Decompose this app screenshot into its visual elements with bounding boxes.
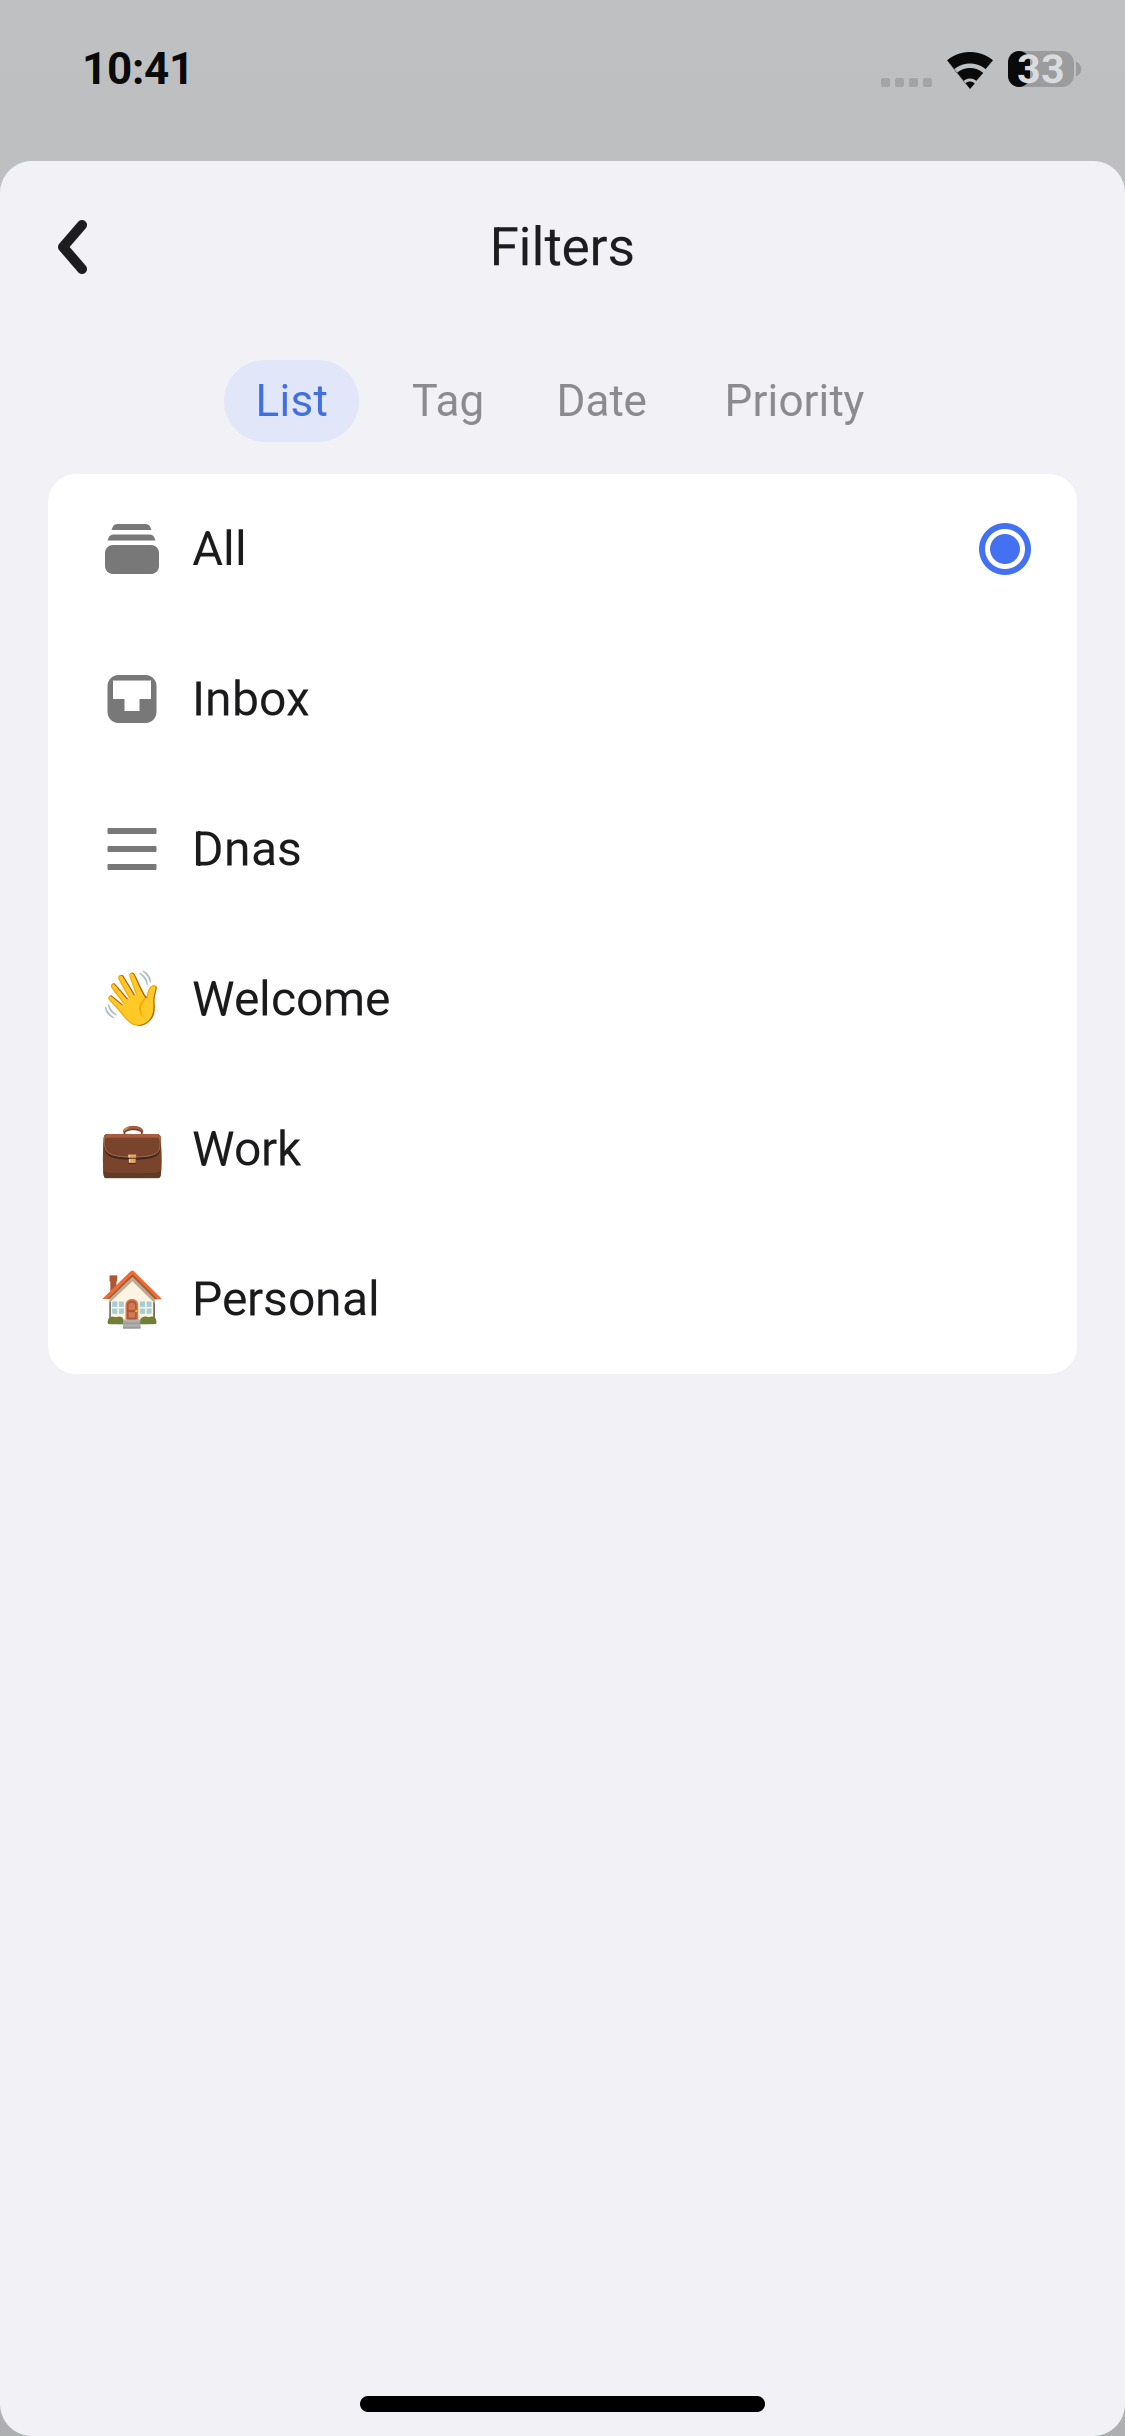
- button[interactable]: Back: [0, 194, 125, 300]
- staticText: Dnas: [192, 821, 302, 877]
- button[interactable]: 💼: [48, 1074, 1077, 1224]
- button[interactable]: Inbox: [48, 624, 1077, 774]
- staticText: All: [192, 521, 247, 577]
- button[interactable]: Priority: [688, 360, 901, 442]
- staticText: Work: [192, 1121, 301, 1177]
- button[interactable]: List: [224, 360, 359, 442]
- button[interactable]: Dnas: [48, 774, 1077, 924]
- button[interactable]: 👋: [48, 924, 1077, 1074]
- button[interactable]: Tag: [381, 360, 515, 442]
- staticText: Priority: [724, 375, 864, 427]
- button[interactable]: 🏠: [48, 1224, 1077, 1374]
- staticText: 💼: [99, 1118, 165, 1180]
- button[interactable]: All: [48, 474, 1077, 624]
- staticText: Welcome: [192, 971, 390, 1027]
- staticText: 33: [1017, 45, 1065, 93]
- staticText: 10:41: [82, 43, 194, 95]
- staticText: 👋: [99, 968, 165, 1030]
- staticText: Personal: [192, 1271, 380, 1327]
- button[interactable]: Date: [529, 360, 674, 442]
- staticText: List: [255, 375, 327, 427]
- staticText: Date: [556, 375, 646, 427]
- staticText: Inbox: [192, 671, 310, 727]
- staticText: Tag: [411, 375, 484, 427]
- staticText: Filters: [489, 216, 635, 278]
- staticText: 🏠: [99, 1268, 165, 1330]
